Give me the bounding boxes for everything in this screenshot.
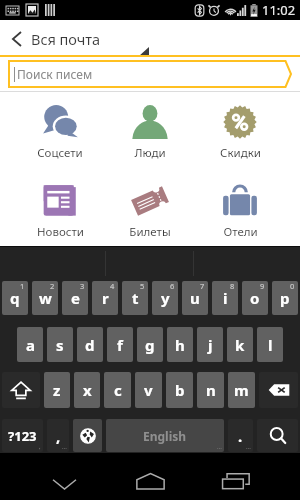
button[interactable]: b xyxy=(166,372,193,408)
staticText: 2 xyxy=(50,281,55,291)
staticText: 3 xyxy=(80,281,85,291)
staticText: u xyxy=(190,288,200,308)
staticText: English xyxy=(143,428,187,444)
staticText: Билеты xyxy=(129,224,171,240)
staticText: o xyxy=(250,288,260,308)
staticText: ... xyxy=(62,443,67,451)
button[interactable]: Билеты xyxy=(105,182,195,240)
staticText: x xyxy=(83,380,92,400)
staticText: l xyxy=(268,335,273,355)
button[interactable]: f xyxy=(107,327,133,362)
staticText: a xyxy=(26,335,35,355)
staticText: Люди xyxy=(134,145,166,161)
button[interactable]: o xyxy=(242,281,268,315)
button[interactable]: Скидки xyxy=(195,103,285,161)
staticText: j xyxy=(208,335,213,355)
staticText: 6 xyxy=(170,281,175,291)
button[interactable]: p xyxy=(272,281,298,315)
staticText: , xyxy=(39,443,41,451)
button[interactable]: Новости xyxy=(15,182,105,240)
staticText: i xyxy=(223,288,228,308)
button[interactable]: k xyxy=(227,327,253,362)
button[interactable]: r xyxy=(92,281,118,315)
staticText: Вся почта xyxy=(31,29,101,49)
button[interactable]: z xyxy=(44,372,70,408)
staticText: 0 xyxy=(290,281,295,291)
staticText: v xyxy=(144,380,153,400)
staticText: c xyxy=(114,380,122,400)
staticText: 11:02 xyxy=(262,1,296,19)
staticText: z xyxy=(53,380,61,400)
staticText: 4 xyxy=(110,281,115,291)
staticText: Отели xyxy=(223,224,258,240)
button[interactable]: i xyxy=(212,281,238,315)
button[interactable]: English xyxy=(106,419,224,452)
staticText: f xyxy=(117,335,123,355)
staticText: h xyxy=(175,335,185,355)
button[interactable]: Recent apps xyxy=(214,461,258,500)
button[interactable]: l xyxy=(257,327,283,362)
staticText: y xyxy=(161,288,170,308)
button[interactable]: d xyxy=(77,327,103,362)
button[interactable]: x xyxy=(74,372,100,408)
button[interactable]: t xyxy=(122,281,148,315)
button[interactable]: Shift xyxy=(2,372,40,408)
button[interactable]: Hide keyboard xyxy=(42,461,86,500)
staticText: Поиск писем xyxy=(17,66,93,82)
staticText: e xyxy=(71,288,80,308)
button[interactable]: Search xyxy=(257,419,298,452)
button[interactable]: Back xyxy=(4,27,28,51)
staticText: ... xyxy=(246,443,251,451)
button[interactable]: e xyxy=(62,281,88,315)
staticText: ... xyxy=(217,443,222,451)
button[interactable]: Change language xyxy=(73,419,102,452)
staticText: Соцсети xyxy=(37,145,83,161)
button[interactable]: ?123 xyxy=(2,419,43,452)
button[interactable]: g xyxy=(137,327,163,362)
staticText: d xyxy=(85,335,95,355)
button[interactable]: , xyxy=(47,419,69,452)
button[interactable]: s xyxy=(47,327,73,362)
staticText: n xyxy=(206,380,216,400)
button[interactable]: v xyxy=(135,372,162,408)
staticText: , xyxy=(56,426,61,446)
button[interactable]: . xyxy=(228,419,253,452)
button[interactable]: w xyxy=(32,281,58,315)
staticText: t xyxy=(132,288,139,308)
staticText: 1 xyxy=(20,281,25,291)
button[interactable]: Люди xyxy=(105,103,195,161)
button[interactable]: Соцсети xyxy=(15,103,105,161)
staticText: 7 xyxy=(200,281,205,291)
button[interactable]: u xyxy=(182,281,208,315)
staticText: 9 xyxy=(260,281,265,291)
staticText: Новости xyxy=(37,224,84,240)
button[interactable]: Backspace xyxy=(259,372,298,408)
button[interactable]: Поиск писем xyxy=(8,60,292,88)
button[interactable]: h xyxy=(167,327,193,362)
staticText: 8 xyxy=(230,281,235,291)
staticText: q xyxy=(10,288,20,308)
staticText: ?123 xyxy=(8,427,37,445)
button[interactable]: c xyxy=(104,372,131,408)
staticText: p xyxy=(280,288,290,308)
button[interactable]: y xyxy=(152,281,178,315)
staticText: s xyxy=(56,335,64,355)
staticText: 5 xyxy=(140,281,145,291)
button[interactable]: Отели xyxy=(195,182,285,240)
staticText: w xyxy=(39,288,52,308)
staticText: r xyxy=(102,288,109,308)
button[interactable]: m xyxy=(228,372,255,408)
button[interactable]: j xyxy=(197,327,223,362)
staticText: g xyxy=(145,335,155,355)
staticText: k xyxy=(235,335,245,355)
button[interactable]: a xyxy=(17,327,43,362)
button[interactable]: Home xyxy=(128,461,172,500)
button[interactable]: q xyxy=(2,281,28,315)
staticText: Скидки xyxy=(220,145,261,161)
button[interactable]: n xyxy=(197,372,224,408)
staticText: m xyxy=(234,380,249,400)
staticText: b xyxy=(175,380,185,400)
staticText: . xyxy=(238,426,243,446)
